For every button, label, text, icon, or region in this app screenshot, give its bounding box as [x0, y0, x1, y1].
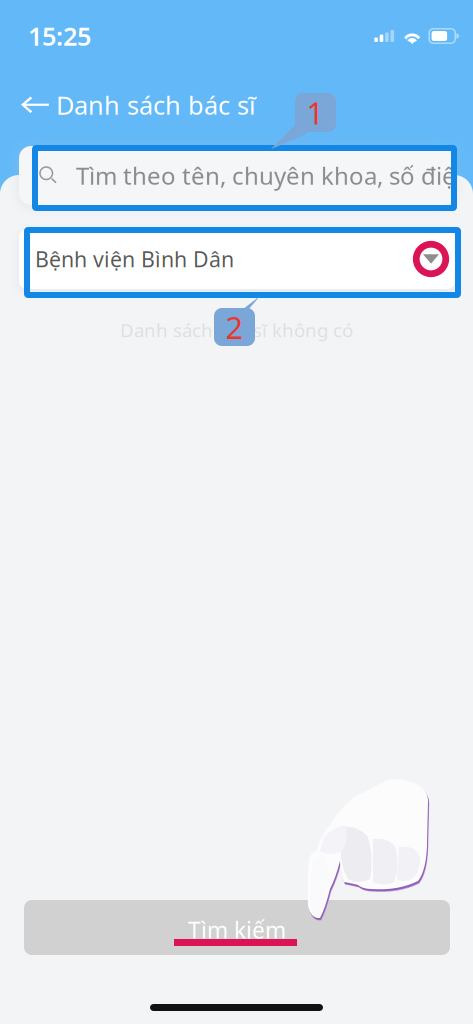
- staticText: 1: [306, 92, 324, 133]
- button[interactable]: Tìm theo tên, chuyên khoa, số điệ: [19, 146, 455, 205]
- button[interactable]: Bệnh viện Bình Dân: [19, 229, 455, 289]
- staticText: Tìm kiếm: [188, 915, 286, 945]
- staticText: Tìm theo tên, chuyên khoa, số điệ: [76, 160, 456, 191]
- staticText: Bệnh viện Bình Dân: [35, 245, 234, 273]
- button[interactable]: Tìm kiếm: [24, 900, 450, 955]
- button[interactable]: Danh sách bác sĩ: [0, 82, 320, 128]
- staticText: Danh sách bác sĩ: [56, 88, 256, 122]
- staticText: 15:25: [28, 19, 91, 53]
- staticText: Danh sách bác sĩ không có: [120, 318, 353, 342]
- staticText: 2: [225, 307, 243, 347]
